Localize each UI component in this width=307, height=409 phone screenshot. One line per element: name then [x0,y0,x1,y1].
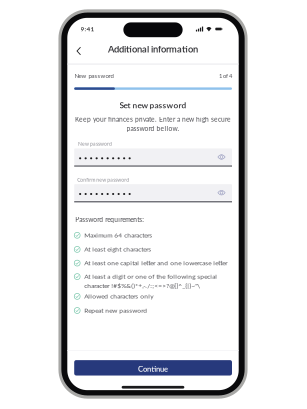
staticText: Repeat new password [84,306,147,314]
staticText: 1 of 4 [219,72,232,79]
staticText: 9:41 [81,25,95,33]
staticText: Continue [138,364,168,373]
staticText: At least one capital letter and one lowe… [84,259,227,267]
button[interactable]: Back [67,18,81,32]
staticText: Set new password [119,100,186,110]
button[interactable]: Continue [67,18,225,33]
staticText: New password [75,72,114,79]
staticText: password bellow. [126,124,179,132]
staticText: At least a digit or one of the following… [84,272,217,280]
staticText: Confirm new password [77,177,129,183]
staticText: At least eight characters [84,245,151,253]
staticText: Maximum 64 characters [84,231,152,239]
staticText: character !#$%&()*+,-./:;<=>?@[]^_{|}~"\ [84,282,200,289]
staticText: Keep your finances private. Enter a new … [75,115,231,123]
staticText: Allowed characters only [84,292,153,300]
staticText: Password requirements: [75,216,144,223]
staticText: New password [78,141,112,147]
button[interactable]: Show New password [67,18,81,34]
staticText: Additional information [108,43,198,55]
button[interactable]: Show Confirm new password [67,18,81,34]
